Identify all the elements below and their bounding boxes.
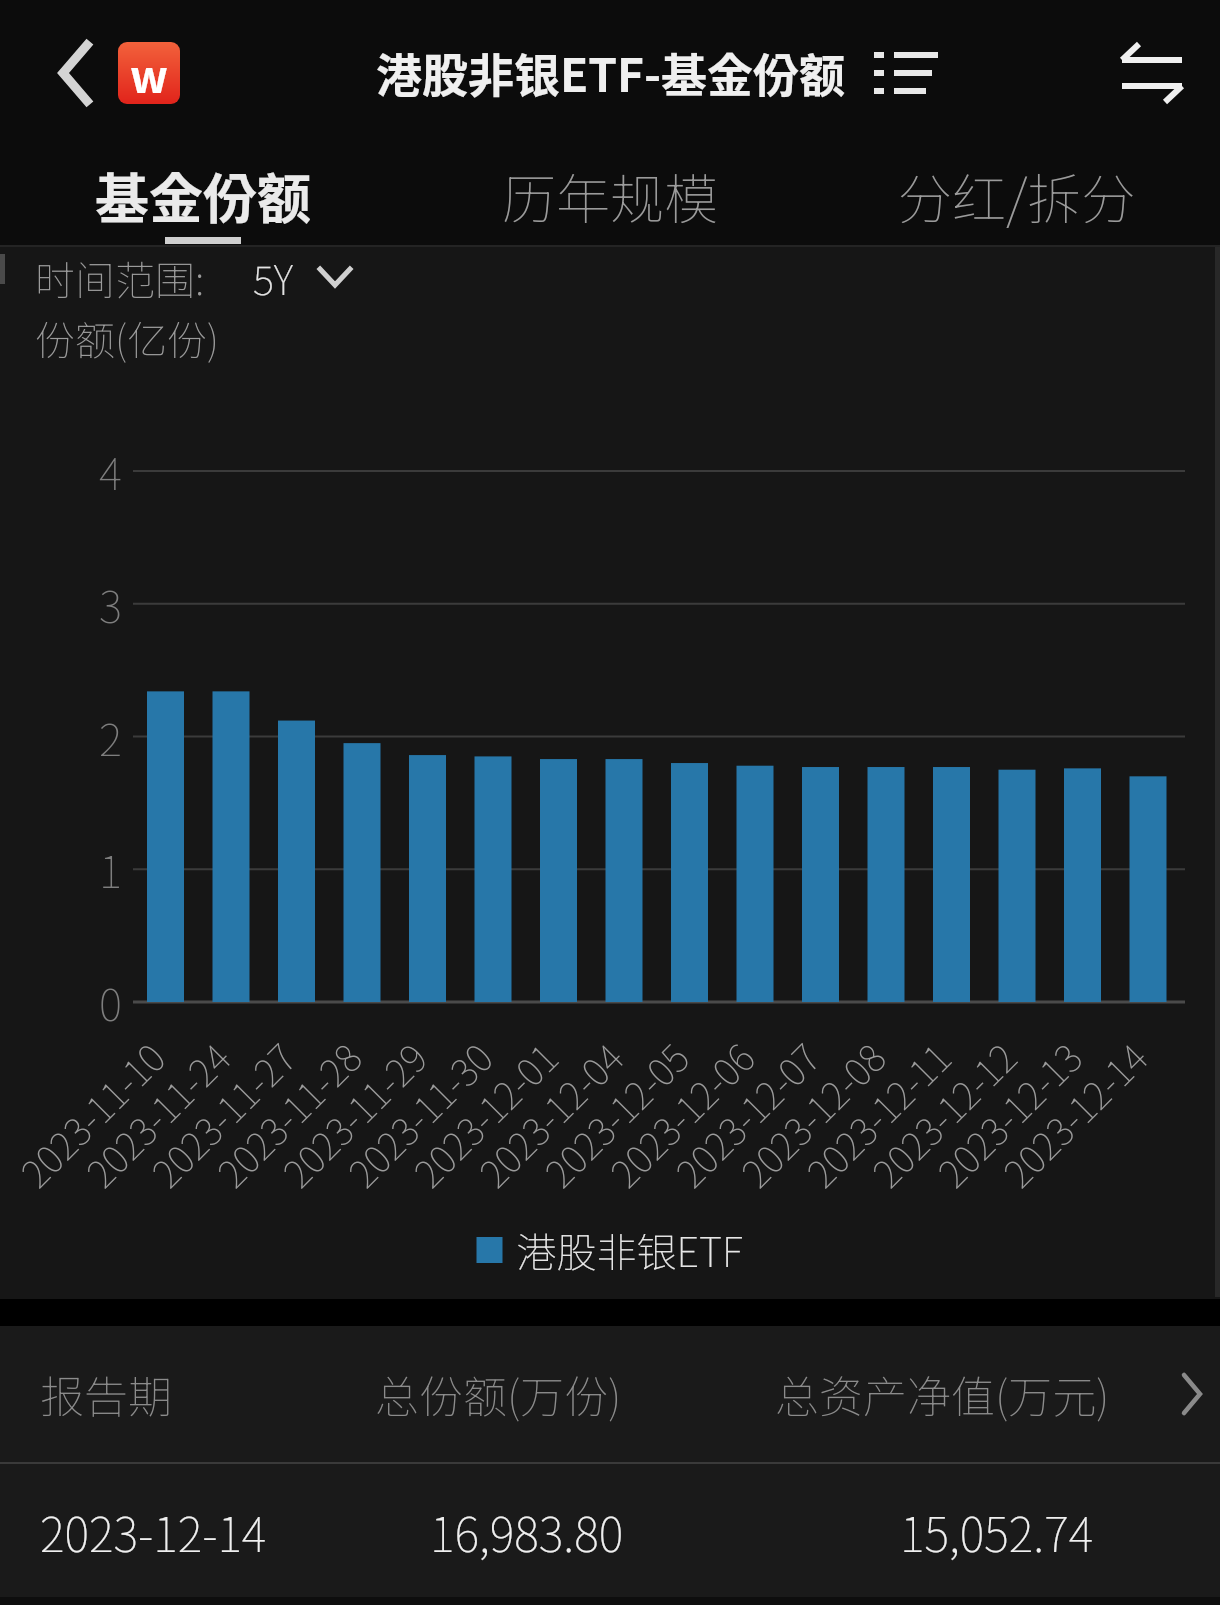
staticText: 份额(亿份) [35,309,219,367]
button[interactable]: 2023-12-14 [0,1464,1220,1597]
button[interactable]: 时间范围: [35,249,352,305]
staticText: 2023-12-14 [40,1497,267,1565]
button[interactable] [0,0,108,145]
staticText: 报告期 [40,1362,172,1426]
staticText: 15,052.74 [900,1497,1094,1565]
staticText: 分红/拆分 [898,156,1136,234]
staticText: 5Y [253,249,294,305]
staticText: w [130,42,168,104]
button[interactable]: 分红/拆分 [813,145,1220,245]
staticText: 基金份额 [95,156,311,234]
staticText: 时间范围: [35,249,205,305]
button[interactable]: 基金份额 [0,145,406,245]
staticText: 历年规模 [502,156,718,234]
staticText: 16,983.80 [430,1497,624,1565]
staticText: 总份额(万份) [375,1362,622,1426]
button[interactable] [1106,28,1198,118]
button[interactable]: 历年规模 [406,145,813,245]
staticText: 港股非银ETF-基金份额 [376,39,845,106]
staticText: 总资产净值(万元) [775,1362,1110,1426]
button[interactable]: w [118,42,180,104]
button[interactable]: 报告期 [0,1326,1220,1462]
